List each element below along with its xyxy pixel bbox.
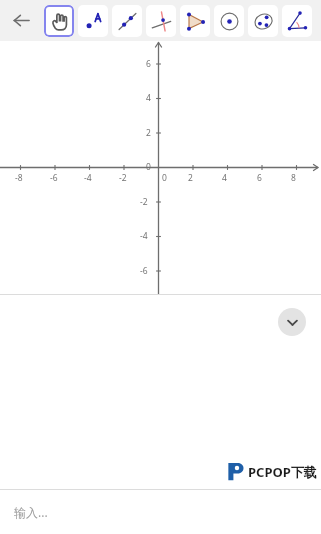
button[interactable]: Polygon tool [180,5,210,37]
button[interactable]: Circle tool [214,5,244,37]
button[interactable]: 输入... [0,490,321,534]
button[interactable]: Point tool [78,5,108,37]
staticText: 4 [222,172,227,184]
button[interactable]: Collapse panel [278,308,306,336]
staticText: 6 [257,172,262,184]
staticText: 6 [146,58,151,70]
staticText: -6 [50,172,58,184]
button[interactable]: Angle tool [282,5,312,37]
staticText: -8 [15,172,23,184]
staticText: 4 [146,92,151,104]
staticText: 8 [291,172,296,184]
button[interactable]: Ellipse tool [248,5,278,37]
staticText: 2 [146,127,151,139]
staticText: -4 [140,230,148,242]
button[interactable]: Perpendicular line tool [146,5,176,37]
staticText: 输入... [14,504,48,520]
button[interactable]: Back [0,0,42,41]
staticText: -2 [140,196,148,208]
staticText: -6 [140,265,148,277]
staticText: -2 [119,172,127,184]
staticText: -4 [84,172,92,184]
button[interactable]: Line tool [112,5,142,37]
staticText: 0 [162,172,167,184]
staticText: 0 [146,161,151,173]
button[interactable]: Move tool [44,5,74,37]
staticText: 2 [188,172,193,184]
staticText: PCPOP下载 [248,463,317,481]
